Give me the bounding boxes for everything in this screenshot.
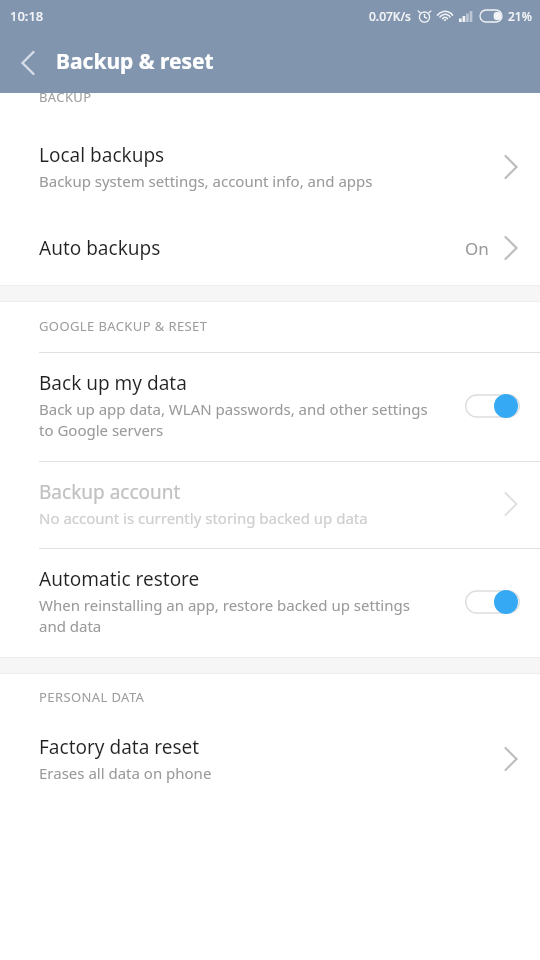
- staticText: GOOGLE BACKUP & RESET: [39, 317, 208, 335]
- staticText: PERSONAL DATA: [39, 688, 145, 706]
- staticText: No account is currently storing backed u…: [39, 508, 368, 528]
- button[interactable]: Local backups: [0, 115, 540, 213]
- button[interactable]: Factory data reset: [0, 706, 540, 803]
- button[interactable]: Back up my data: [0, 353, 540, 461]
- button[interactable]: Backup account: [0, 462, 540, 548]
- staticText: 10:18: [10, 7, 44, 25]
- staticText: Backup & reset: [56, 47, 214, 76]
- button[interactable]: Back: [0, 35, 56, 91]
- staticText: Erases all data on phone: [39, 763, 212, 783]
- button[interactable]: Automatic restore: [0, 549, 540, 657]
- staticText: On: [465, 237, 489, 260]
- button[interactable]: Back up my data toggle: [461, 387, 524, 425]
- staticText: Back up app data, WLAN passwords, and ot…: [39, 399, 439, 441]
- button[interactable]: Auto backups: [0, 213, 540, 285]
- staticText: Back up my data: [39, 370, 187, 396]
- staticText: Auto backups: [39, 235, 161, 261]
- staticText: Factory data reset: [39, 734, 200, 760]
- staticText: BACKUP: [39, 88, 92, 106]
- staticText: Backup account: [39, 479, 181, 505]
- button[interactable]: Automatic restore toggle: [461, 583, 524, 621]
- staticText: When reinstalling an app, restore backed…: [39, 595, 439, 637]
- staticText: 0.07K/s: [369, 8, 411, 24]
- staticText: 21%: [508, 8, 532, 24]
- staticText: Automatic restore: [39, 566, 200, 592]
- staticText: Backup system settings, account info, an…: [39, 171, 373, 191]
- staticText: Local backups: [39, 142, 165, 168]
